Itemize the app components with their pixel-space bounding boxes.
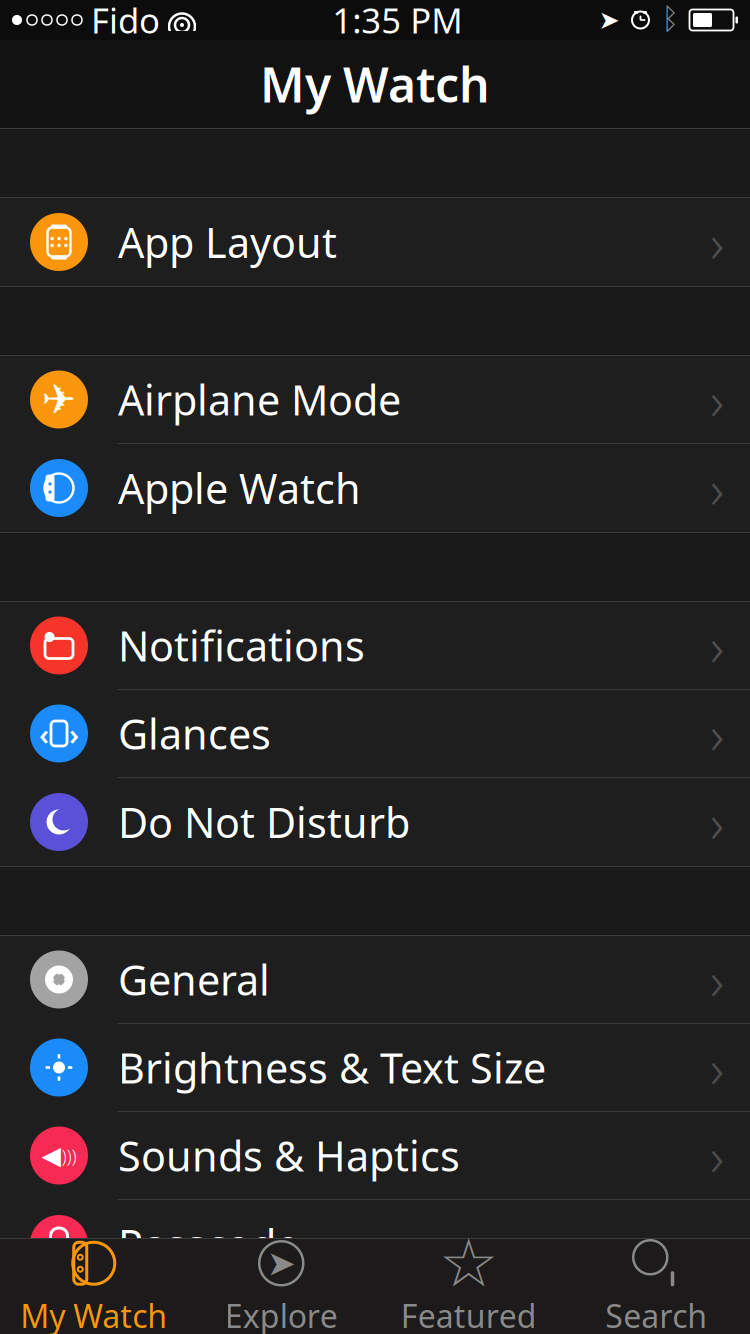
button[interactable]: Notifications <box>0 602 750 690</box>
staticText: Brightness & Text Size <box>118 1040 546 1095</box>
staticText: ‹ <box>39 714 49 753</box>
staticText: My Watch <box>20 1294 167 1334</box>
button[interactable]: ‹ <box>0 690 750 778</box>
staticText: Notifications <box>118 618 365 673</box>
button[interactable]: ◀ <box>0 1112 750 1200</box>
staticText: ◀ <box>41 1141 60 1170</box>
staticText: › <box>710 610 724 681</box>
staticText: Passcode <box>118 1217 299 1271</box>
staticText: ➤ <box>598 6 619 34</box>
staticText: › <box>710 787 724 857</box>
staticText: › <box>710 1120 724 1191</box>
staticText: › <box>710 1209 724 1279</box>
staticText: Apple Watch <box>118 461 361 515</box>
staticText: App Layout <box>118 215 337 269</box>
staticText: › <box>710 207 724 277</box>
staticText: › <box>69 714 79 753</box>
staticText: ))) <box>61 1143 76 1168</box>
staticText: › <box>710 698 724 769</box>
button[interactable]: Apple Watch <box>0 444 750 532</box>
button[interactable]: Do Not Disturb <box>0 778 750 866</box>
staticText: ✈ <box>41 376 76 423</box>
button[interactable]: Search <box>562 1239 750 1334</box>
staticText: ➤ <box>267 1244 296 1283</box>
staticText: Fido <box>91 0 160 43</box>
button[interactable]: ☆ <box>375 1239 562 1334</box>
staticText: Featured <box>401 1294 537 1334</box>
staticText: Search <box>605 1294 707 1334</box>
staticText: Explore <box>225 1294 338 1334</box>
staticText: Sounds & Haptics <box>118 1128 460 1183</box>
staticText: › <box>710 364 724 435</box>
staticText: 1:35 PM <box>332 0 462 43</box>
staticText: Glances <box>118 706 271 761</box>
staticText: ᛒ <box>661 6 679 34</box>
button[interactable]: ➤ <box>187 1239 375 1334</box>
staticText: › <box>710 944 724 1015</box>
staticText: Do Not Disturb <box>118 795 410 849</box>
staticText: General <box>118 952 270 1007</box>
staticText: › <box>710 1032 724 1103</box>
staticText: My Watch <box>260 52 490 116</box>
button[interactable]: ✈ <box>0 356 750 444</box>
button[interactable]: Brightness & Text Size <box>0 1024 750 1112</box>
staticText: ☆ <box>439 1225 499 1301</box>
button[interactable]: General <box>0 936 750 1024</box>
button[interactable]: App Layout <box>0 198 750 286</box>
staticText: Airplane Mode <box>118 372 401 427</box>
button[interactable]: Passcode <box>0 1200 750 1288</box>
staticText: › <box>710 453 724 523</box>
button[interactable]: My Watch <box>0 1239 187 1334</box>
